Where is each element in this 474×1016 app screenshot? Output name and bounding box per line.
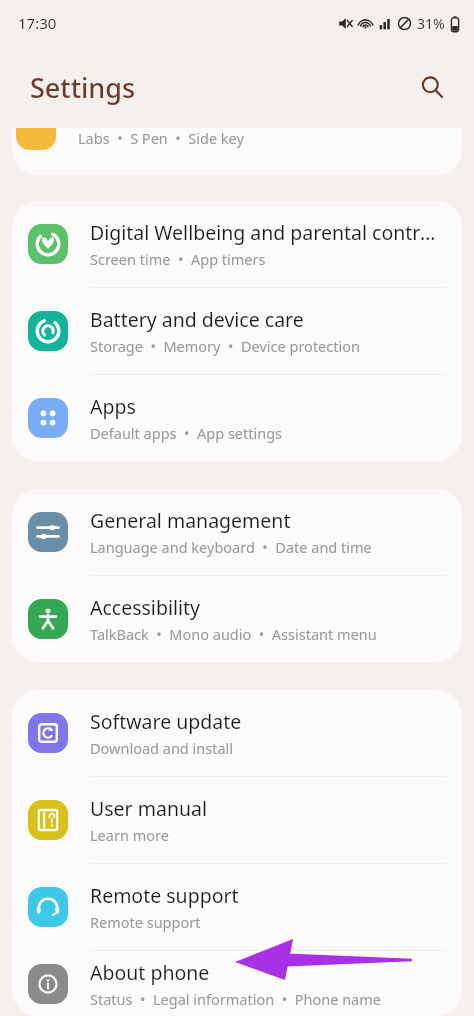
staticText: TalkBack • Mono audio • Assistant menu — [90, 624, 377, 644]
staticText: Language and keyboard • Date and time — [90, 537, 372, 557]
staticText: 31% — [417, 14, 445, 33]
button[interactable]: Software update — [12, 690, 462, 777]
staticText: Learn more — [90, 825, 169, 845]
staticText: General management — [90, 507, 291, 534]
button[interactable]: About phone — [12, 951, 462, 1016]
staticText: Battery and device care — [90, 306, 304, 333]
staticText: User manual — [90, 795, 207, 822]
staticText: Storage • Memory • Device protection — [90, 336, 360, 356]
staticText: Download and install — [90, 738, 234, 758]
staticText: Labs • S Pen • Side key — [78, 128, 244, 148]
staticText: Digital Wellbeing and parental controls — [90, 219, 442, 246]
staticText: About phone — [90, 959, 210, 986]
staticText: Default apps • App settings — [90, 423, 283, 443]
staticText: Software update — [90, 708, 242, 735]
button[interactable]: Accessibility — [12, 576, 462, 662]
button[interactable]: Remote support — [12, 864, 462, 951]
button[interactable]: Search — [410, 65, 454, 109]
staticText: 17:30 — [18, 13, 57, 33]
staticText: Accessibility — [90, 594, 200, 621]
button[interactable]: General management — [12, 489, 462, 576]
staticText: Settings — [30, 69, 136, 106]
button[interactable]: Apps — [12, 375, 462, 461]
staticText: Screen time • App timers — [90, 249, 266, 269]
staticText: Remote support — [90, 882, 239, 909]
staticText: Remote support — [90, 912, 201, 932]
button[interactable]: User manual — [12, 777, 462, 864]
button[interactable]: Battery and device care — [12, 288, 462, 375]
staticText: Status • Legal information • Phone name — [90, 989, 381, 1009]
button[interactable]: Labs • S Pen • Side key — [12, 128, 462, 175]
staticText: Apps — [90, 393, 136, 420]
button[interactable]: Digital Wellbeing and parental controls — [12, 201, 462, 288]
